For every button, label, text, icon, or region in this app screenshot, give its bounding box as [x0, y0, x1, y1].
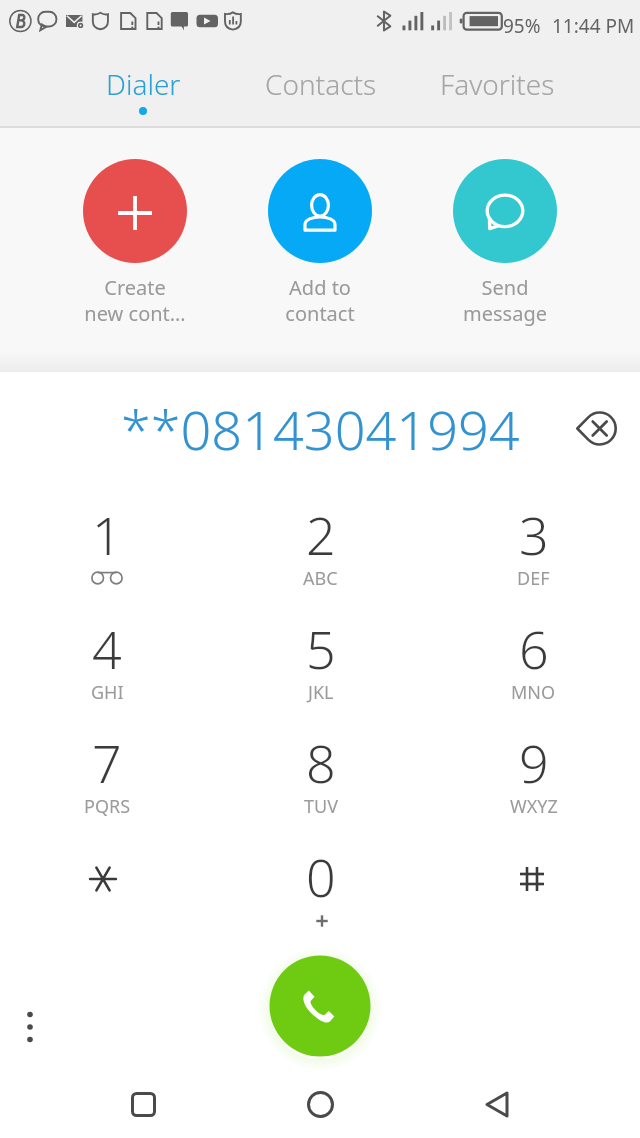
button[interactable]: 5 [214, 604, 427, 718]
button[interactable]: Home [290, 1074, 350, 1134]
staticText: 6 [519, 613, 549, 684]
button[interactable]: Back [467, 1074, 527, 1134]
staticText: DEF [517, 566, 550, 591]
staticText: JKL [308, 680, 334, 705]
staticText: Add to contact [285, 274, 355, 327]
staticText: 11:44 PM [552, 13, 635, 39]
button[interactable]: More options [8, 1005, 52, 1049]
button[interactable]: Call [258, 944, 382, 1068]
button[interactable]: Backspace [565, 397, 627, 459]
staticText: 2 [306, 499, 336, 570]
button[interactable]: 7 [0, 718, 214, 832]
staticText: **08143041994 [121, 392, 520, 462]
staticText: Favorites [440, 65, 555, 103]
staticText: WXYZ [510, 794, 558, 819]
staticText: 0 [306, 841, 336, 912]
staticText: Send message [463, 274, 547, 327]
staticText: 8 [306, 727, 336, 798]
staticText: 3 [519, 499, 549, 570]
button[interactable]: 3 [427, 490, 640, 604]
staticText: 5 [306, 613, 336, 684]
staticText: 9 [519, 727, 549, 798]
staticText: Dialer [106, 65, 181, 103]
button[interactable]: 8 [214, 718, 427, 832]
button[interactable]: Recents [113, 1074, 173, 1134]
button[interactable]: 0 [214, 832, 427, 946]
button[interactable]: Favorites [409, 46, 586, 126]
button[interactable]: Dialer [54, 46, 232, 126]
staticText: MNO [511, 680, 556, 705]
staticText: Contacts [265, 65, 377, 103]
button[interactable]: 9 [427, 718, 640, 832]
staticText: GHI [91, 680, 124, 705]
button[interactable] [0, 832, 214, 946]
staticText: ABC [303, 566, 338, 591]
staticText: 95% [503, 13, 541, 39]
staticText: 7 [92, 727, 122, 798]
button[interactable]: 4 [0, 604, 214, 718]
staticText: TUV [304, 794, 338, 819]
button[interactable]: 1 [0, 490, 214, 604]
staticText: 4 [92, 613, 122, 684]
staticText: 1 [92, 499, 122, 570]
button[interactable]: Contacts [232, 46, 409, 126]
button[interactable]: Send message [412, 128, 597, 360]
button[interactable]: 2 [214, 490, 427, 604]
button[interactable]: Add to contact [227, 128, 412, 360]
button[interactable]: 6 [427, 604, 640, 718]
button[interactable]: Create new cont… [43, 128, 227, 360]
staticText: PQRS [84, 794, 131, 819]
staticText: Create new cont… [84, 274, 186, 327]
button[interactable] [427, 832, 640, 946]
